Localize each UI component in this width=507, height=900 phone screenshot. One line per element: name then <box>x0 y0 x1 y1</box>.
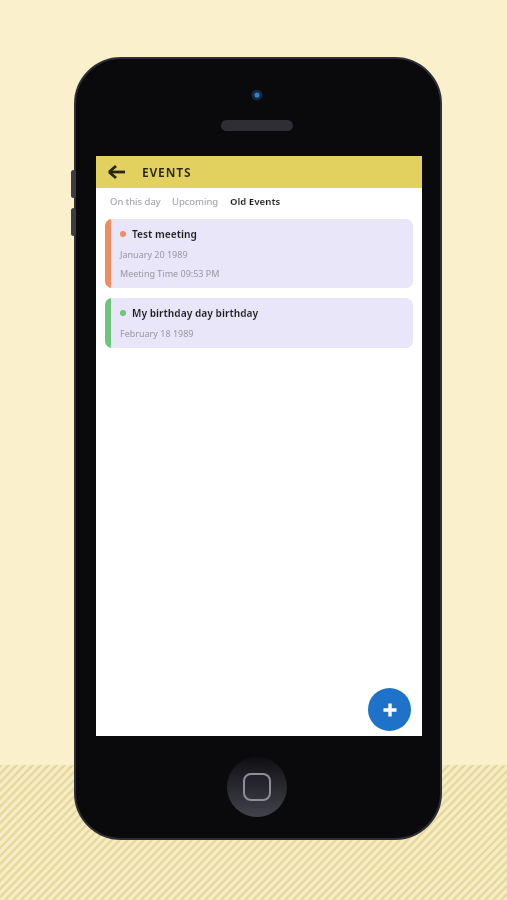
button[interactable]: Add event <box>368 688 411 731</box>
staticText: Meeting Time 09:53 PM <box>120 267 220 279</box>
button[interactable]: Old Events <box>227 192 284 211</box>
staticText: On this day <box>110 195 161 208</box>
staticText: February 18 1989 <box>120 327 194 339</box>
button[interactable]: On this day <box>107 192 164 211</box>
staticText: Old Events <box>230 195 281 208</box>
staticText: Upcoming <box>172 195 219 208</box>
staticText: My birthday day birthday <box>132 306 259 320</box>
button[interactable]: My birthday day birthday <box>105 298 413 348</box>
staticText: Test meeting <box>132 227 197 241</box>
button[interactable]: Upcoming <box>169 192 222 211</box>
button[interactable]: Test meeting <box>105 219 413 288</box>
staticText: January 20 1989 <box>120 248 188 260</box>
button[interactable]: Back <box>102 157 132 187</box>
staticText: EVENTS <box>142 164 192 180</box>
